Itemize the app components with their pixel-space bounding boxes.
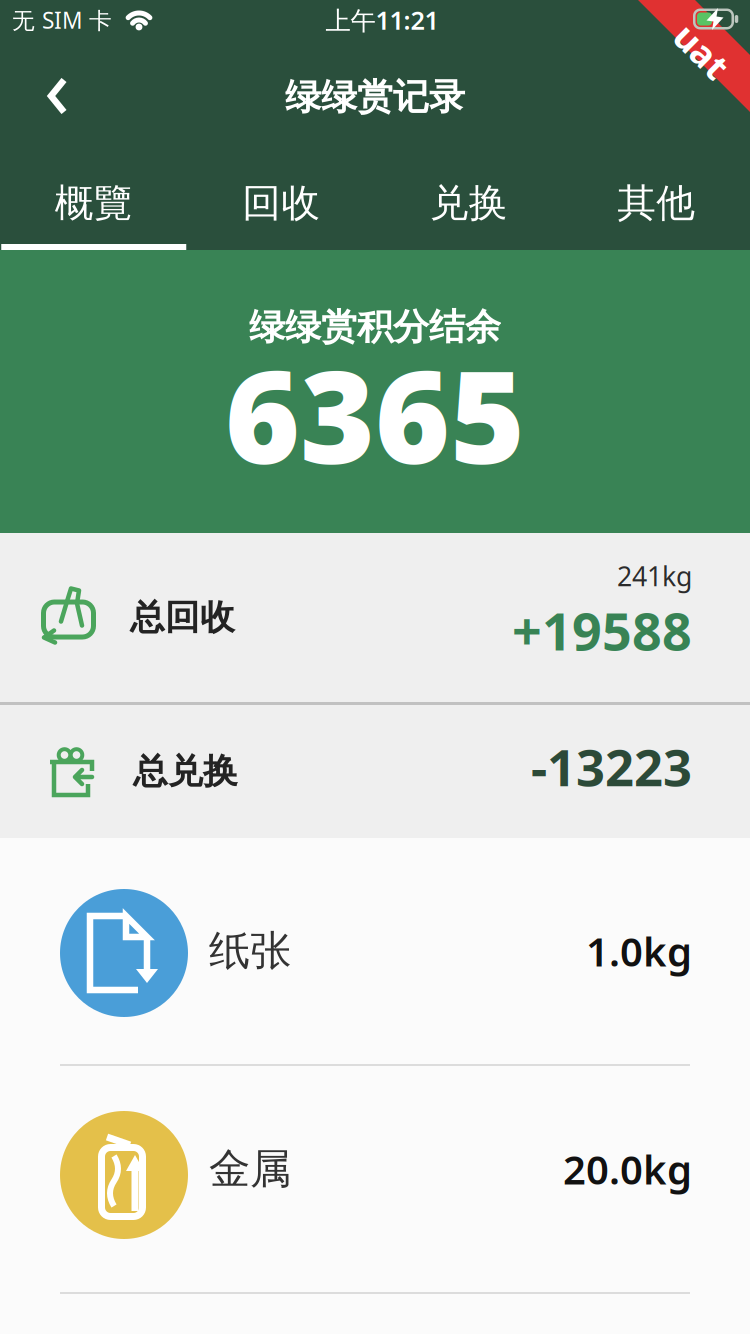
staticText: -13223 [531,733,692,800]
staticText: uat [671,27,732,75]
button[interactable]: 回收 [187,150,375,250]
staticText: 绿绿赏积分结余 [249,305,501,349]
staticText: 241kg [617,558,692,594]
staticText: 纸张 [209,926,291,976]
button[interactable]: 纸张 [0,838,750,1064]
staticText: 1.0kg [586,924,692,977]
staticText: 上午11:21 [325,3,438,37]
staticText: 总兑换 [133,750,238,793]
staticText: 兑换 [430,179,508,227]
staticText: 总回收 [130,596,235,639]
staticText: 回收 [242,179,320,227]
staticText: +19588 [512,596,692,665]
button[interactable]: 兑换 [375,150,562,250]
staticText: 绿绿赏记录 [285,75,465,119]
button[interactable]: 概覽 [0,150,187,250]
staticText: 无 SIM 卡 [12,5,112,35]
staticText: 金属 [209,1144,291,1194]
button[interactable]: 返回 [17,61,97,131]
staticText: 概覽 [55,179,133,227]
staticText: 其他 [617,179,695,227]
staticText: 20.0kg [563,1142,692,1195]
button[interactable]: 其他 [562,150,750,250]
staticText: 6365 [225,329,525,499]
button[interactable]: 金属 [0,1066,750,1292]
